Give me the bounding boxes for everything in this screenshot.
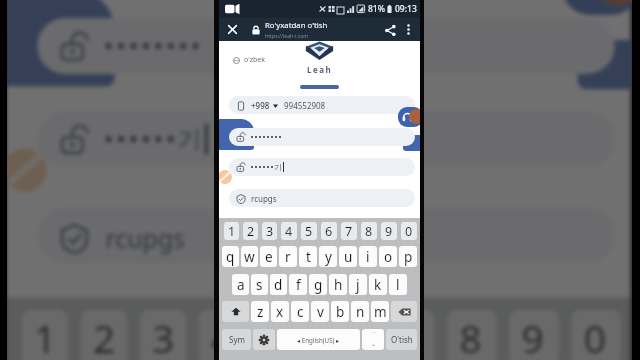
button[interactable]: 9 [509,310,559,360]
button[interactable]: b [331,301,349,322]
button[interactable]: 3 [262,222,277,240]
button[interactable]: x [271,301,289,322]
button[interactable]: n [351,301,369,322]
button[interactable]: m [371,301,389,322]
staticText: 0 [405,223,413,240]
staticText: x [276,303,284,321]
staticText: b [336,303,345,321]
staticText: 7 [345,223,353,240]
button[interactable]: 0 [401,222,417,240]
staticText: 8 [459,313,484,360]
button[interactable]: i [359,246,377,267]
button[interactable]: h [329,274,347,295]
button[interactable]: 2 [243,222,258,240]
staticText: rcupgs [105,220,186,254]
button[interactable]: O'tish [386,329,417,350]
staticText: 994552908 [284,100,326,111]
button[interactable]: o'zbek [233,55,266,65]
button[interactable]: Support [398,107,423,127]
staticText: https://leah-i.com [265,32,309,39]
button[interactable]: Settings [253,329,275,350]
button[interactable]: 6 [321,222,337,240]
button[interactable]: v [311,301,329,322]
button[interactable]: g [309,274,327,295]
staticText: ◂ English(US) ▸ [297,336,340,344]
button[interactable]: 2 [81,310,127,360]
button[interactable]: Close [224,18,241,41]
staticText: 09:13 [395,3,417,15]
staticText: y [325,248,332,266]
button[interactable]: q [222,246,239,267]
staticText: 6 [325,223,333,240]
button[interactable]: d [270,274,287,295]
button[interactable]: ' ' ' [362,329,384,350]
staticText: 1 [228,223,236,240]
staticText: 5 [305,223,313,240]
button[interactable]: 1 [224,222,239,240]
button[interactable]: j [349,274,367,295]
staticText: k [374,276,382,294]
button[interactable]: 5 [301,222,317,240]
staticText: d [274,276,283,294]
staticText: e [265,248,273,266]
button[interactable] [229,128,415,146]
button[interactable]: 7 [385,310,435,360]
staticText: l [396,276,400,294]
button[interactable]: Sym [222,329,251,350]
button[interactable]: ◂ English(US) ▸ [277,329,360,350]
button[interactable]: s [251,274,268,295]
button[interactable]: rcupgs [37,207,615,263]
button[interactable]: Share [381,21,399,39]
staticText: h [334,276,343,294]
button[interactable] [37,18,615,74]
button[interactable]: k [369,274,387,295]
button[interactable]: Support [562,0,640,15]
staticText: m [374,303,387,321]
button[interactable]: w [241,246,258,267]
button[interactable]: r [279,246,297,267]
button[interactable]: 1 [22,310,68,360]
staticText: i [366,248,370,266]
button[interactable]: f [289,274,307,295]
staticText: q [226,248,235,266]
button[interactable]: +998 [229,96,415,114]
button[interactable]: o [379,246,397,267]
button[interactable]: 기 [229,158,415,176]
button[interactable]: 3 [140,310,186,360]
button[interactable]: Shift [222,301,249,322]
button[interactable]: 4 [199,310,248,360]
button[interactable]: 기 [37,111,615,167]
button[interactable]: rcupgs [229,189,415,207]
button[interactable]: 8 [447,310,497,360]
button[interactable]: p [399,246,417,267]
button[interactable]: Backspace [391,301,417,322]
button[interactable]: c [291,301,309,322]
button[interactable]: a [232,274,249,295]
staticText: s [256,276,263,294]
staticText: 기 [177,124,202,155]
button[interactable]: t [299,246,317,267]
button[interactable]: 4 [281,222,297,240]
staticText: p [404,248,413,266]
staticText: o'zbek [244,55,266,65]
button[interactable]: z [251,301,269,322]
staticText: rcupgs [251,193,277,204]
staticText: 1 [34,313,59,360]
staticText: +998 [251,100,270,111]
button[interactable]: l [389,274,407,295]
button[interactable]: 9 [381,222,397,240]
button[interactable]: e [260,246,277,267]
staticText: t [306,248,311,266]
staticText: o [384,248,393,266]
staticText: Ro'yxatdan o'tish [265,20,328,31]
button[interactable]: 0 [571,310,621,360]
button[interactable]: 7 [341,222,357,240]
button[interactable]: y [319,246,337,267]
button[interactable]: u [339,246,357,267]
staticText: 9 [385,223,393,240]
staticText: f [296,276,301,294]
button[interactable]: 6 [323,310,373,360]
button[interactable]: 8 [361,222,377,240]
button[interactable]: More options [401,22,416,37]
button[interactable]: 5 [261,310,310,360]
